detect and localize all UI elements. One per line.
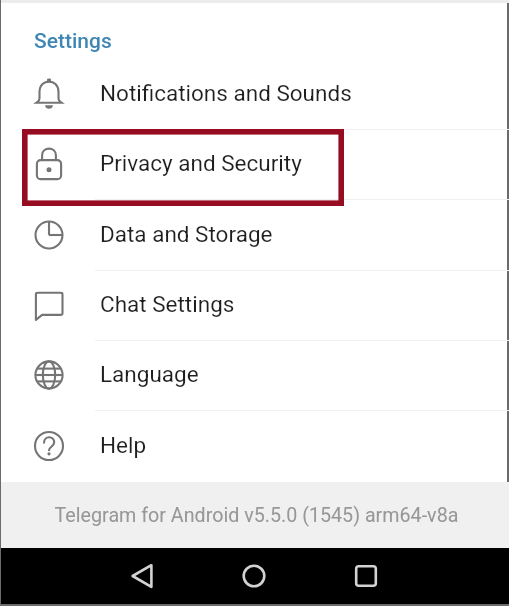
- staticText: Data and Storage: [100, 221, 273, 247]
- staticText: Telegram for Android v5.5.0 (1545) arm64…: [2, 504, 509, 527]
- staticText: Language: [100, 361, 199, 387]
- staticText: Privacy and Security: [100, 150, 302, 176]
- button[interactable]: Language: [1, 341, 509, 411]
- staticText: Help: [100, 432, 147, 458]
- button[interactable]: Privacy and Security: [1, 130, 509, 200]
- button[interactable]: Help: [1, 412, 509, 482]
- staticText: Settings: [34, 29, 112, 54]
- button[interactable]: Recent apps: [343, 548, 389, 604]
- button[interactable]: Home: [231, 548, 277, 604]
- button[interactable]: Chat Settings: [1, 271, 509, 341]
- button[interactable]: Data and Storage: [1, 201, 509, 271]
- button[interactable]: Back: [119, 548, 165, 604]
- button[interactable]: Notifications and Sounds: [1, 60, 509, 130]
- staticText: Notifications and Sounds: [100, 80, 352, 106]
- staticText: Chat Settings: [100, 291, 235, 317]
